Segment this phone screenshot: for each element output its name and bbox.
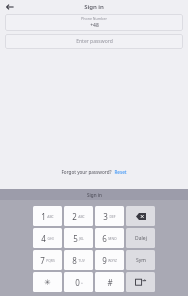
button[interactable]: Reset <box>114 169 127 175</box>
staticText: Sym <box>136 257 146 264</box>
staticText: # <box>107 277 113 288</box>
staticText: 9 <box>102 255 107 266</box>
button[interactable]: # <box>95 272 124 292</box>
staticText: ABC <box>78 214 85 219</box>
button[interactable]: 1 <box>33 206 62 226</box>
staticText: ABC <box>47 214 54 219</box>
staticText: TUV <box>78 258 85 263</box>
button[interactable]: 7 <box>33 250 62 270</box>
button[interactable]: ✳ <box>33 272 62 292</box>
button[interactable]: Enter password <box>5 34 183 49</box>
button[interactable]: 2 <box>64 206 93 226</box>
button[interactable]: Phone Number <box>5 14 183 31</box>
staticText: Dalej <box>135 235 147 242</box>
staticText: 4 <box>41 233 46 244</box>
staticText: MNO <box>108 236 117 241</box>
staticText: 3 <box>103 211 108 222</box>
staticText: 7 <box>40 255 45 266</box>
staticText: Sign in <box>84 3 104 11</box>
button[interactable]: 8 <box>64 250 93 270</box>
button[interactable]: Back <box>4 1 16 13</box>
button[interactable]: 0 <box>64 272 93 292</box>
button[interactable]: 5 <box>64 228 93 248</box>
button[interactable]: 6 <box>95 228 124 248</box>
button[interactable]: Dalej <box>126 228 155 248</box>
button[interactable]: 9 <box>95 250 124 270</box>
staticText: Forgot your password? <box>61 169 112 175</box>
staticText: 0 <box>75 277 80 288</box>
staticText: Reset <box>114 169 127 175</box>
button[interactable]: Backspace <box>126 206 155 226</box>
staticText: WXYZ <box>108 258 117 263</box>
button[interactable]: Switch keyboard <box>126 272 155 292</box>
staticText: DEF <box>109 214 116 219</box>
button[interactable]: Sign in <box>0 189 188 200</box>
staticText: JKL <box>79 236 84 241</box>
staticText: 6 <box>102 233 107 244</box>
staticText: Sign in <box>87 192 102 198</box>
staticText: 5 <box>73 233 78 244</box>
staticText: 2 <box>72 211 77 222</box>
staticText: Enter password <box>76 38 113 45</box>
button[interactable]: 4 <box>33 228 62 248</box>
staticText: ✳ <box>44 278 51 287</box>
staticText: + <box>81 280 83 285</box>
staticText: PQRS <box>46 258 55 263</box>
staticText: Phone Number <box>81 16 107 21</box>
button[interactable]: Sym <box>126 250 155 270</box>
staticText: 8 <box>72 255 77 266</box>
staticText: 1 <box>41 211 46 222</box>
staticText: GHI <box>47 236 54 241</box>
staticText: +48 <box>90 22 99 29</box>
button[interactable]: 3 <box>95 206 124 226</box>
